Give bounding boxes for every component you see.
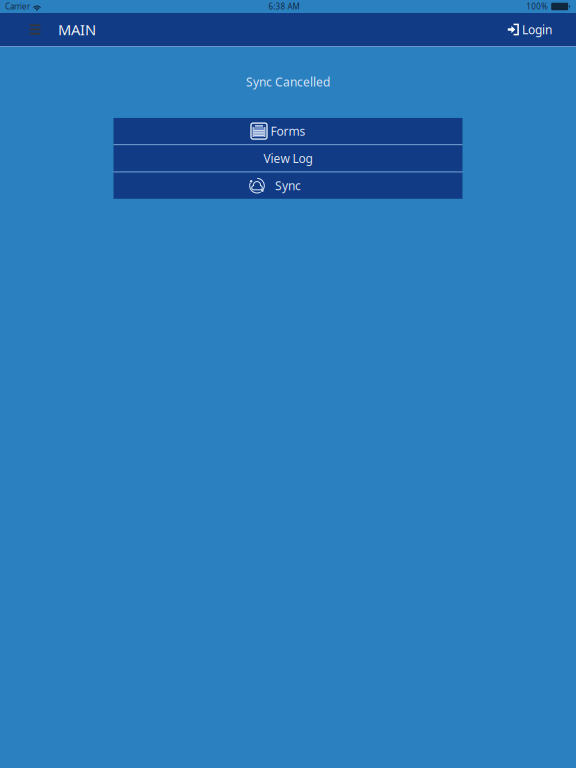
button[interactable]: Login <box>497 12 576 46</box>
staticText: 100% <box>526 1 548 12</box>
staticText: Sync Cancelled <box>246 74 330 90</box>
staticText: Sync <box>275 178 301 194</box>
button[interactable]: Forms <box>113 118 462 144</box>
staticText: MAIN <box>58 20 96 39</box>
button[interactable]: View Log <box>113 145 462 171</box>
button[interactable]: Menu <box>12 12 58 46</box>
staticText: Login <box>522 21 552 37</box>
staticText: 6:38 AM <box>269 1 300 12</box>
staticText: Forms <box>270 123 305 139</box>
button[interactable]: Sync <box>113 172 462 199</box>
staticText: View Log <box>263 150 312 166</box>
staticText: Carrier <box>5 1 30 12</box>
